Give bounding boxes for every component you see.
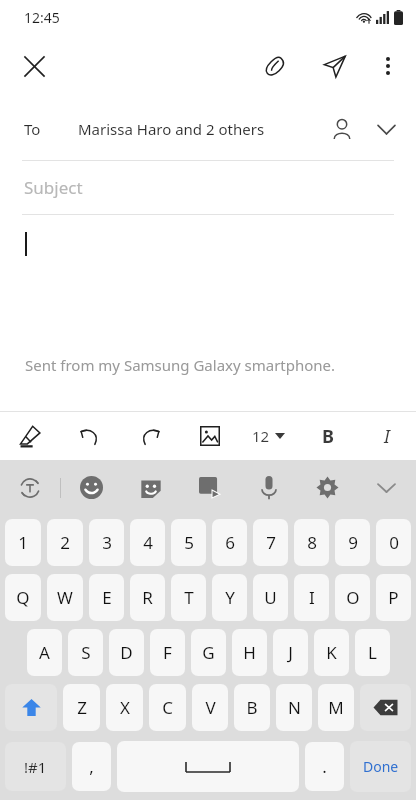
staticText: J — [288, 641, 293, 664]
button[interactable]: B — [234, 684, 270, 731]
staticText: Done — [363, 757, 399, 776]
button[interactable]: R — [130, 574, 165, 621]
staticText: 9 — [348, 531, 358, 554]
button[interactable]: X — [106, 684, 143, 731]
staticText: M — [328, 696, 344, 719]
staticText: A — [39, 641, 50, 664]
button[interactable]: Contacts — [320, 107, 364, 151]
staticText: S — [81, 641, 91, 664]
staticText: I — [384, 424, 390, 449]
staticText: D — [120, 641, 133, 664]
button[interactable]: Translate — [0, 460, 60, 515]
button[interactable]: F — [150, 629, 185, 676]
button[interactable]: E — [89, 574, 124, 621]
staticText: O — [346, 586, 360, 609]
staticText: B — [322, 424, 334, 449]
button[interactable]: 0 — [376, 519, 411, 566]
button[interactable]: V — [192, 684, 228, 731]
button[interactable]: T — [171, 574, 206, 621]
button[interactable]: I — [357, 412, 416, 460]
staticText: L — [368, 641, 377, 664]
staticText: Marissa Haro and 2 others — [78, 119, 265, 139]
button[interactable]: Backspace — [360, 684, 411, 731]
button[interactable]: H — [232, 629, 267, 676]
button[interactable]: K — [314, 629, 349, 676]
button[interactable]: W — [47, 574, 83, 621]
staticText: Z — [77, 696, 87, 719]
button[interactable]: Emoji — [61, 460, 121, 515]
button[interactable]: Voice input — [239, 460, 298, 515]
staticText: 7 — [266, 531, 276, 554]
button[interactable]: Done — [350, 741, 411, 792]
button[interactable]: Send — [310, 42, 358, 90]
button[interactable]: Attach — [252, 42, 300, 90]
button[interactable]: Undo — [60, 412, 120, 460]
staticText: N — [288, 696, 301, 719]
button[interactable]: S — [68, 629, 103, 676]
button[interactable]: Expand recipients — [364, 107, 408, 151]
staticText: To — [24, 119, 41, 139]
staticText: !#1 — [24, 757, 47, 777]
staticText: 12 — [252, 426, 270, 446]
staticText: Subject — [24, 176, 83, 199]
button[interactable]: 6 — [212, 519, 247, 566]
button[interactable]: . — [305, 742, 344, 791]
button[interactable]: Close — [10, 42, 58, 90]
button[interactable]: , — [72, 742, 111, 791]
staticText: R — [142, 586, 153, 609]
button[interactable]: Z — [63, 684, 100, 731]
staticText: , — [89, 755, 94, 778]
button[interactable]: To — [0, 98, 416, 160]
button[interactable]: C — [149, 684, 186, 731]
staticText: 5 — [184, 531, 194, 554]
staticText: Sent from my Samsung Galaxy smartphone. — [25, 355, 336, 375]
button[interactable]: 3 — [89, 519, 124, 566]
button[interactable]: B — [298, 412, 357, 460]
button[interactable]: 2 — [47, 519, 83, 566]
button[interactable]: Space — [117, 741, 299, 792]
staticText: W — [57, 586, 73, 609]
button[interactable]: Q — [5, 574, 41, 621]
button[interactable]: P — [376, 574, 411, 621]
button[interactable]: 5 — [171, 519, 206, 566]
button[interactable]: 1 — [5, 519, 41, 566]
button[interactable]: N — [276, 684, 312, 731]
button[interactable]: Shift — [5, 684, 57, 731]
button[interactable]: GIF — [180, 460, 239, 515]
button[interactable]: Keyboard settings — [298, 460, 357, 515]
staticText: 4 — [143, 531, 153, 554]
button[interactable]: Stickers — [121, 460, 180, 515]
button[interactable]: 12 — [239, 412, 298, 460]
staticText: U — [264, 586, 277, 609]
button[interactable]: D — [109, 629, 144, 676]
button[interactable]: Hide keyboard — [357, 460, 416, 515]
button[interactable]: Symbols — [5, 742, 66, 791]
staticText: 0 — [389, 531, 399, 554]
button[interactable]: Insert image — [180, 412, 239, 460]
staticText: K — [326, 641, 337, 664]
button[interactable]: Highlight — [0, 412, 60, 460]
button[interactable]: M — [318, 684, 354, 731]
button[interactable]: J — [273, 629, 308, 676]
button[interactable]: O — [335, 574, 370, 621]
button[interactable]: 4 — [130, 519, 165, 566]
button[interactable]: 8 — [294, 519, 329, 566]
staticText: G — [202, 641, 215, 664]
button[interactable]: Sent from my Samsung Galaxy smartphone. — [0, 215, 416, 411]
button[interactable]: Subject — [0, 161, 416, 214]
button[interactable]: A — [27, 629, 62, 676]
staticText: I — [309, 586, 315, 609]
staticText: T — [184, 586, 194, 609]
button[interactable]: Y — [212, 574, 247, 621]
staticText: C — [162, 696, 173, 719]
button[interactable]: 9 — [335, 519, 370, 566]
button[interactable]: L — [355, 629, 390, 676]
button[interactable]: More options — [364, 42, 412, 90]
button[interactable]: 7 — [253, 519, 288, 566]
button[interactable]: U — [253, 574, 288, 621]
staticText: 3 — [102, 531, 112, 554]
staticText: F — [163, 641, 172, 664]
button[interactable]: G — [191, 629, 226, 676]
button[interactable]: I — [294, 574, 329, 621]
button[interactable]: Redo — [120, 412, 180, 460]
